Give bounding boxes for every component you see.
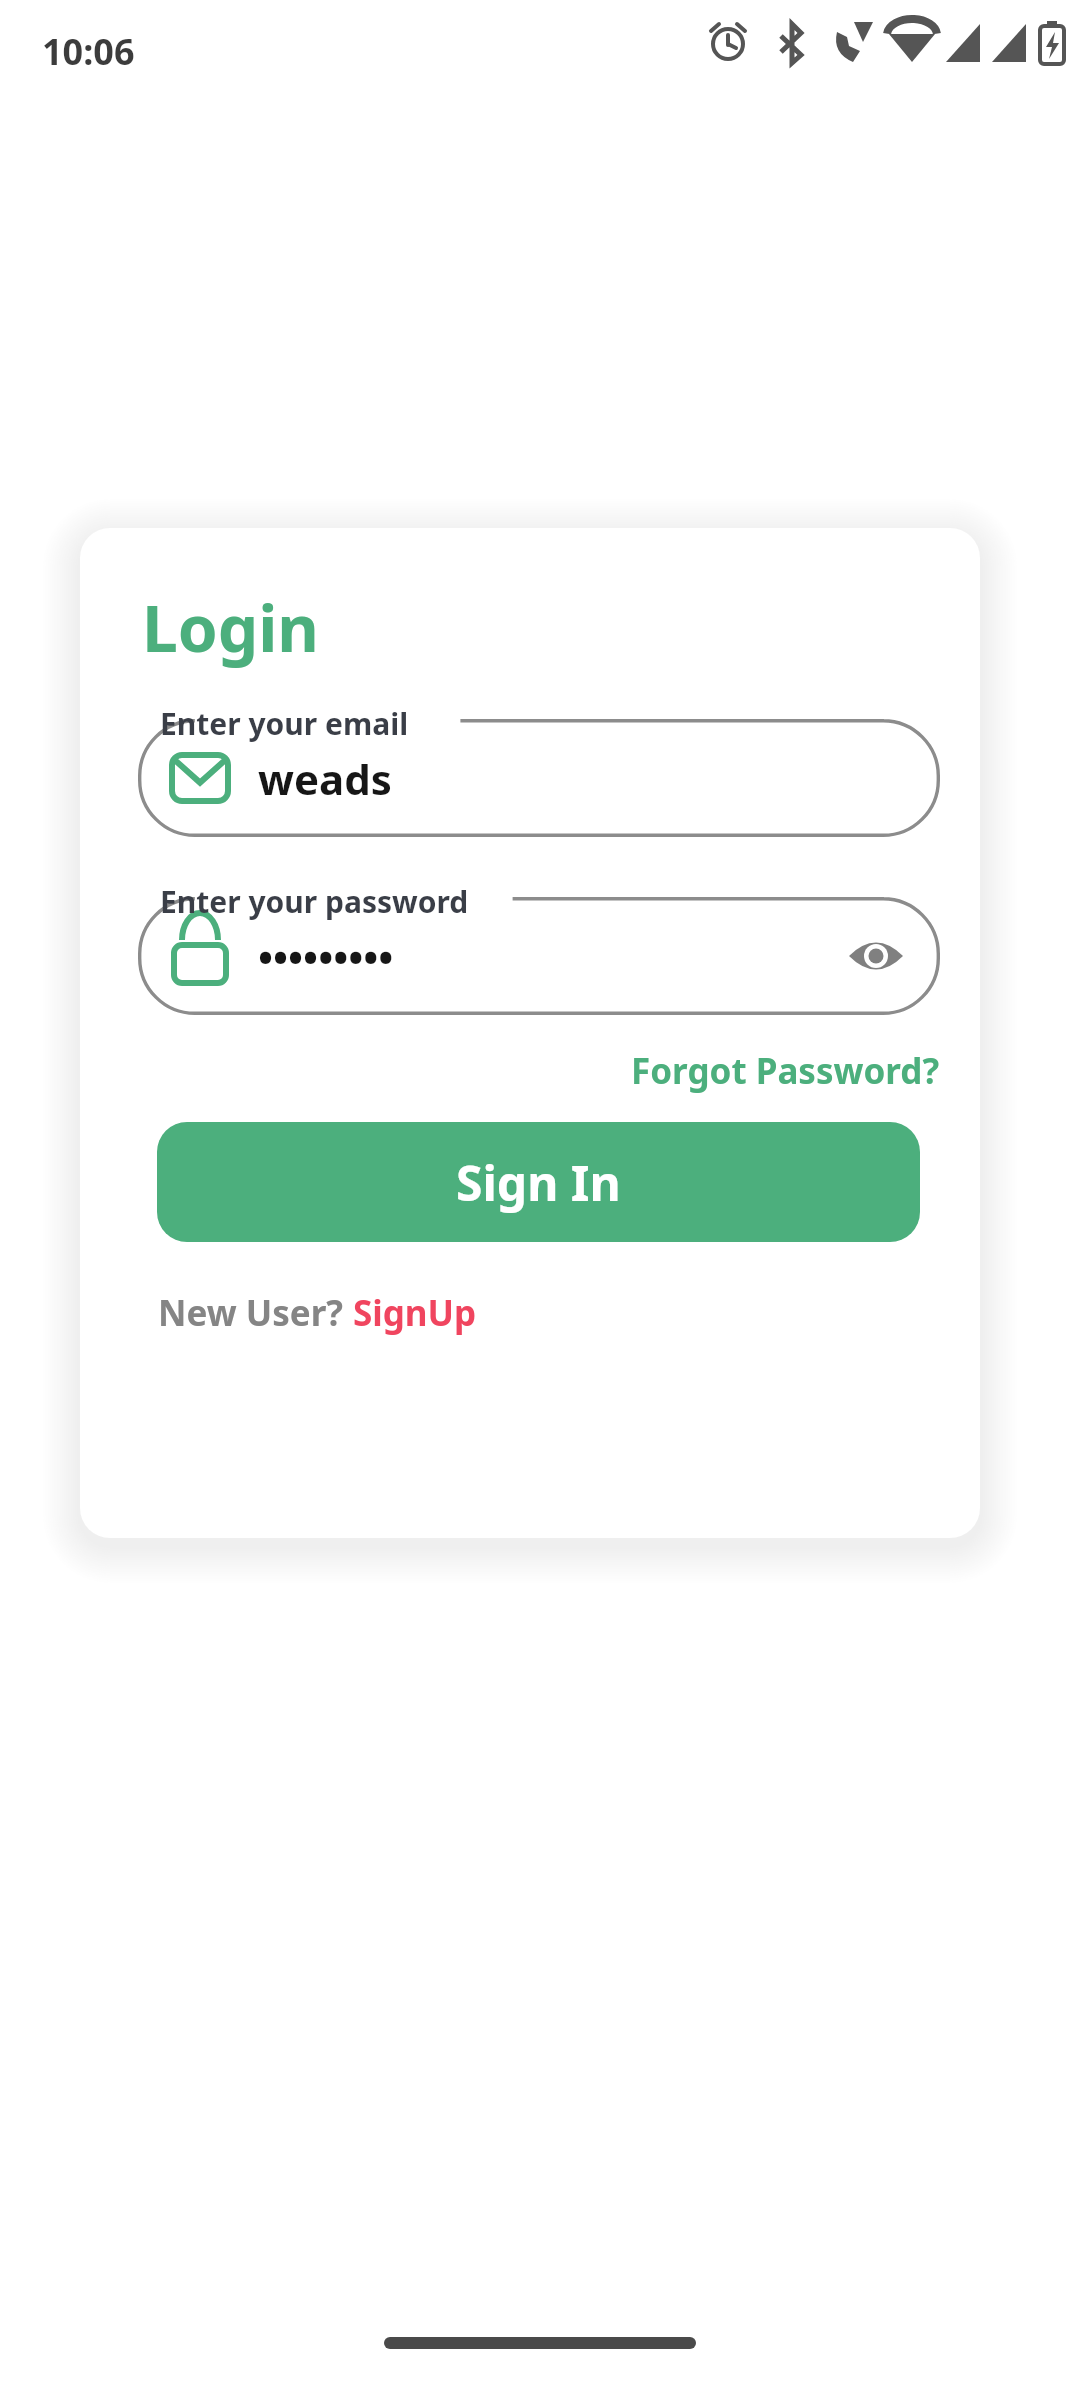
staticText: Enter your password (160, 881, 469, 922)
staticText: Enter your email (160, 703, 409, 744)
staticText: weads (258, 750, 392, 807)
staticText: New User? (158, 1289, 353, 1337)
staticText: Login (142, 584, 319, 671)
button[interactable]: Show password (834, 914, 918, 998)
staticText: 10:06 (42, 27, 135, 76)
staticText: Forgot Password? (631, 1047, 940, 1095)
button[interactable]: Forgot Password? (580, 1038, 940, 1104)
button[interactable]: SignUp (353, 1289, 477, 1337)
staticText: SignUp (353, 1289, 477, 1337)
button[interactable]: Enter your email (138, 719, 940, 837)
staticText: ••••••••• (258, 929, 394, 983)
staticText: Sign In (456, 1150, 621, 1215)
button[interactable]: Enter your password (138, 897, 940, 1015)
button[interactable]: Sign In (157, 1122, 920, 1242)
